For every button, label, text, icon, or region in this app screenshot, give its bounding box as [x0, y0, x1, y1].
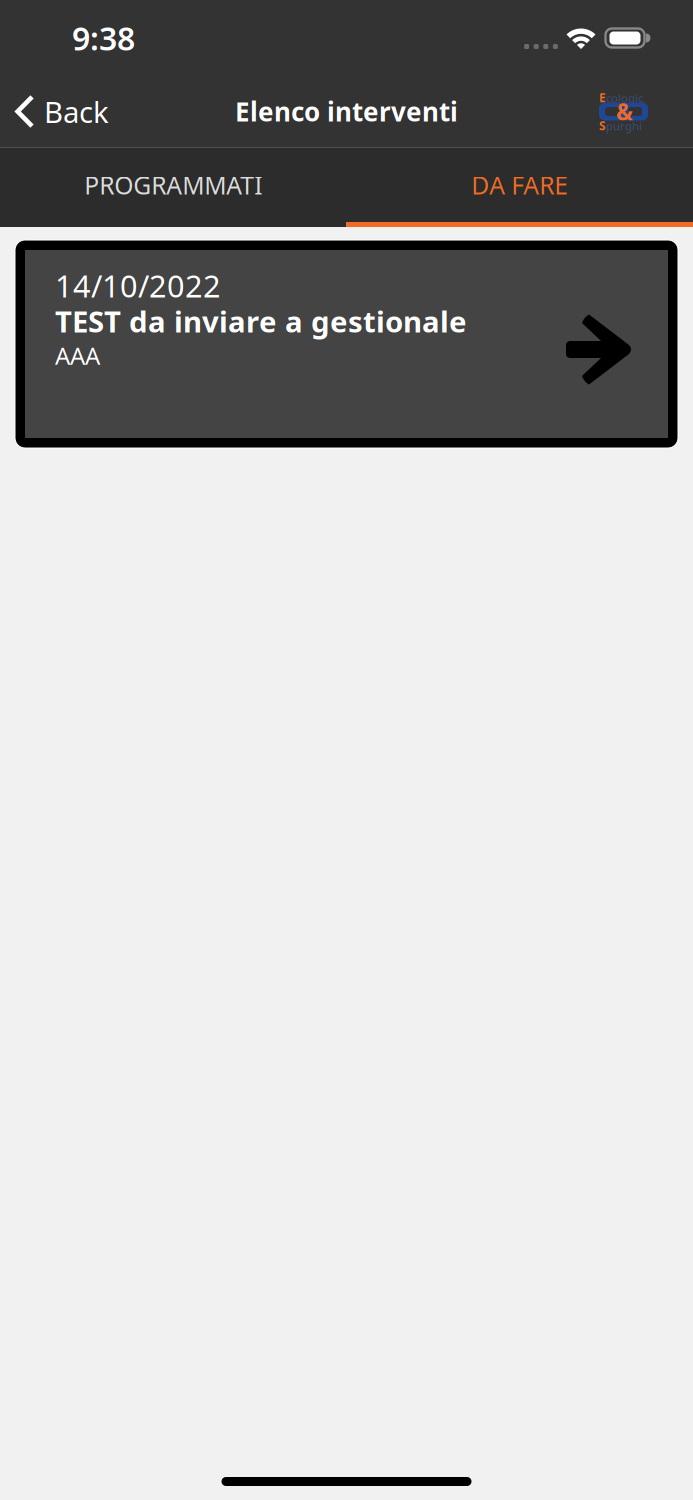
button[interactable]: Back [0, 76, 125, 147]
staticText: & [616, 96, 633, 127]
staticText: AAA [55, 339, 100, 372]
staticText: PROGRAMMATI [84, 168, 262, 202]
staticText: Back [44, 91, 109, 131]
staticText: TEST da inviare a gestionale [55, 301, 467, 341]
button[interactable]: Ecologic C and D Spurghi [599, 92, 693, 130]
staticText: 9:38 [72, 16, 135, 60]
staticText: purghi [606, 118, 642, 133]
staticText: DA FARE [471, 168, 568, 202]
staticText: Elenco interventi [235, 94, 458, 129]
button[interactable]: PROGRAMMATI [0, 148, 346, 222]
staticText: cologic [606, 90, 643, 105]
staticText: 14/10/2022 [55, 265, 221, 306]
staticText: S [599, 117, 606, 134]
staticText: E [599, 89, 606, 106]
button[interactable]: DA FARE [346, 148, 693, 222]
button[interactable]: 14/10/2022 [15, 240, 678, 448]
